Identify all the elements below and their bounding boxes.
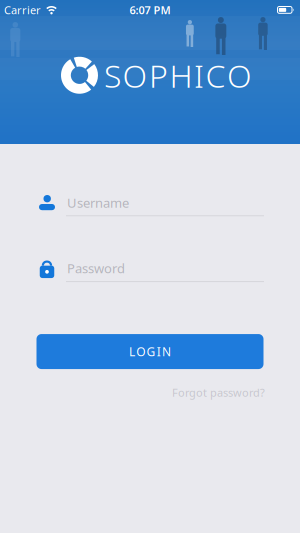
staticText: G [146, 344, 155, 359]
staticText: C [205, 54, 225, 96]
staticText: Carrier [4, 3, 41, 17]
staticText: I [194, 54, 204, 96]
staticText: P [149, 54, 168, 96]
button[interactable]: Forgot password? [172, 385, 265, 400]
staticText: L [129, 344, 135, 359]
button[interactable]: Password [0, 258, 300, 282]
staticText: O [122, 54, 147, 96]
staticText: Forgot password? [172, 385, 265, 400]
staticText: 6:07 PM [129, 3, 170, 17]
button[interactable]: Username [0, 194, 300, 216]
staticText: S [104, 54, 121, 96]
button[interactable]: LOGIN [36, 334, 263, 369]
staticText: Username [67, 194, 129, 211]
staticText: O [227, 54, 252, 96]
staticText: N [162, 344, 171, 359]
staticText: O [136, 344, 145, 359]
staticText: I [157, 344, 161, 359]
staticText: H [169, 54, 192, 96]
staticText: Password [67, 259, 125, 277]
